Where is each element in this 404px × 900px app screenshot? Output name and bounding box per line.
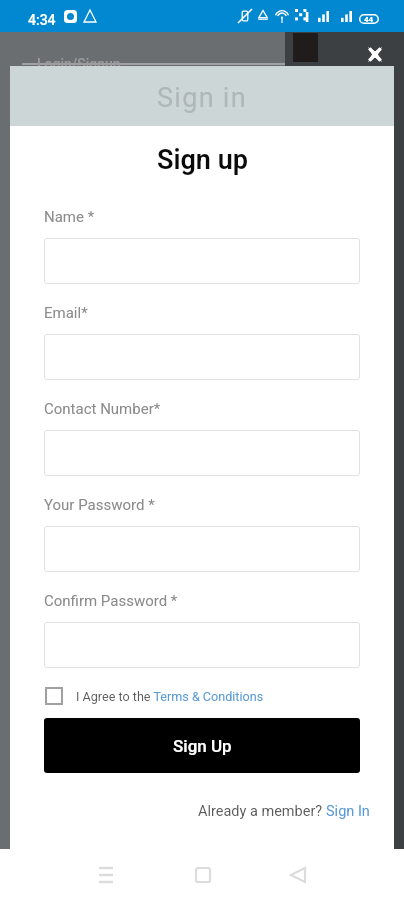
staticText: Your Password * [44,496,155,514]
button[interactable] [44,622,360,668]
button[interactable]: Sign In [326,803,370,820]
staticText: Already a member? [198,803,326,820]
staticText: Sign up [157,144,248,176]
staticText: Sign Up [173,736,232,756]
button[interactable]: Sign Up [44,718,360,773]
staticText: Login/Signup [37,56,121,72]
button[interactable] [44,334,360,380]
button[interactable]: I Agree to the Terms & Conditions [45,686,264,706]
button[interactable]: Home [183,855,223,895]
staticText: Sign in [157,82,247,114]
staticText: Contact Number* [44,400,161,418]
staticText: Confirm Password * [44,592,178,610]
button[interactable] [44,526,360,572]
staticText: Email* [44,304,88,322]
button[interactable]: Back [278,855,318,895]
staticText: I Agree to the Terms & Conditions [76,689,264,704]
button[interactable] [44,430,360,476]
staticText: Name * [44,208,95,226]
staticText: 4:34 [28,12,56,28]
button[interactable]: Sign in [10,66,394,126]
staticText: 44 [364,15,374,24]
button[interactable]: Recents [86,855,126,895]
button[interactable]: Close [362,41,388,67]
button[interactable] [44,238,360,284]
